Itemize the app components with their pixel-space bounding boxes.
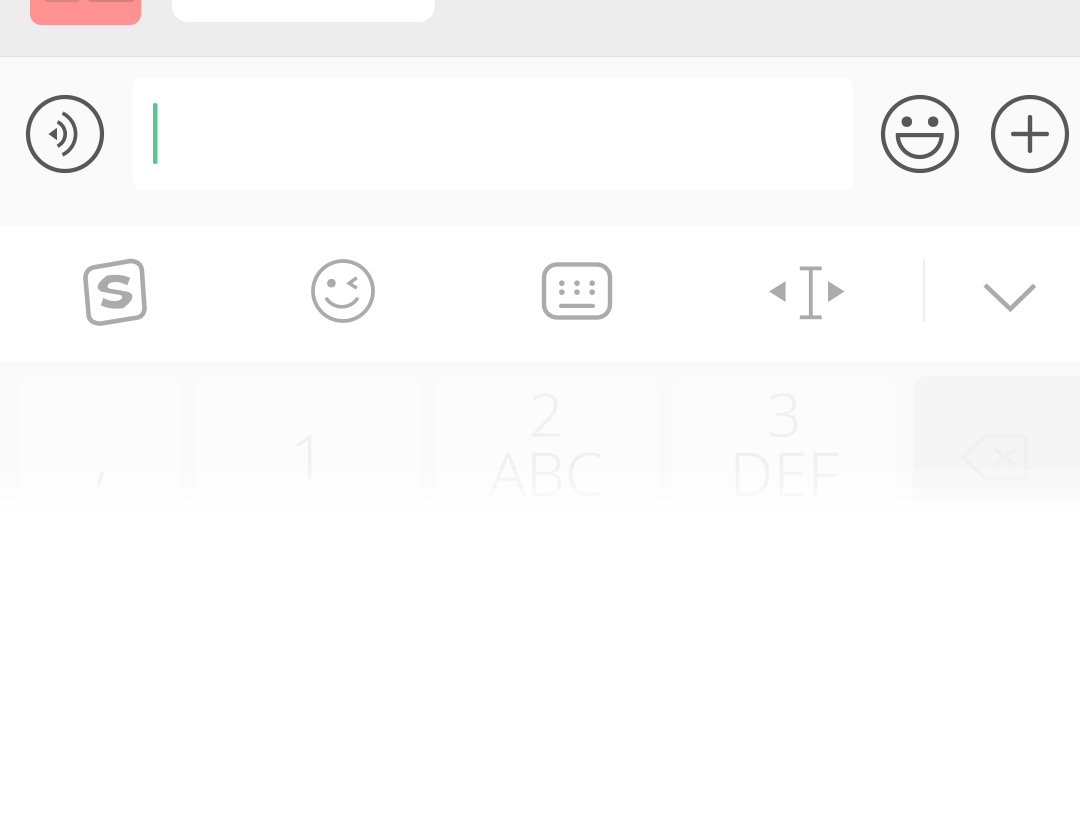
button[interactable]: Hide keyboard [960, 247, 1060, 347]
button[interactable]: Sogou input method [64, 243, 164, 343]
staticText: 2 [528, 372, 563, 454]
button[interactable]: Voice message [17, 86, 113, 182]
button[interactable]: More [982, 86, 1078, 182]
button[interactable]: Message [133, 78, 853, 190]
button[interactable]: Stickers [293, 241, 393, 341]
staticText: DEF [729, 431, 838, 513]
button[interactable]: Emoji [872, 86, 968, 182]
staticText: ABC [489, 431, 603, 513]
staticText: 3 [766, 372, 801, 454]
button[interactable]: Move cursor [757, 243, 857, 343]
button[interactable]: Switch keyboard layout [527, 241, 627, 341]
